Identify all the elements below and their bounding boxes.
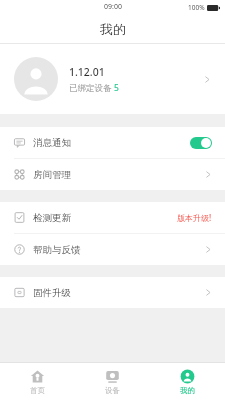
button[interactable]: 帮助与反馈 — [0, 234, 225, 265]
button[interactable]: 固件升级 — [0, 277, 225, 308]
button[interactable]: 消息通知 — [0, 127, 225, 158]
staticText: 消息通知 — [33, 137, 190, 149]
staticText: 设备 — [105, 386, 120, 395]
staticText: 首页 — [30, 386, 45, 395]
staticText: 版本升级! — [177, 212, 212, 223]
staticText: 检测更新 — [33, 212, 177, 224]
staticText: 100% — [188, 3, 205, 12]
staticText: 我的 — [100, 21, 126, 37]
staticText: 我的 — [180, 386, 195, 395]
button[interactable]: 消息通知开关 — [190, 137, 212, 149]
staticText: 帮助与反馈 — [33, 244, 205, 256]
button[interactable]: 我的 — [150, 363, 225, 400]
button[interactable]: 1.12.01 — [0, 44, 225, 114]
button[interactable]: 设备 — [75, 363, 150, 400]
button[interactable]: 检测更新 — [0, 202, 225, 233]
staticText: 1.12.01 — [69, 65, 105, 79]
button[interactable]: 房间管理 — [0, 159, 225, 190]
staticText: 已绑定设备 — [69, 82, 114, 94]
button[interactable]: 首页 — [0, 363, 75, 400]
staticText: 5 — [114, 82, 119, 94]
staticText: 09:00 — [104, 2, 122, 12]
staticText: 固件升级 — [33, 287, 205, 299]
staticText: 房间管理 — [33, 169, 205, 181]
